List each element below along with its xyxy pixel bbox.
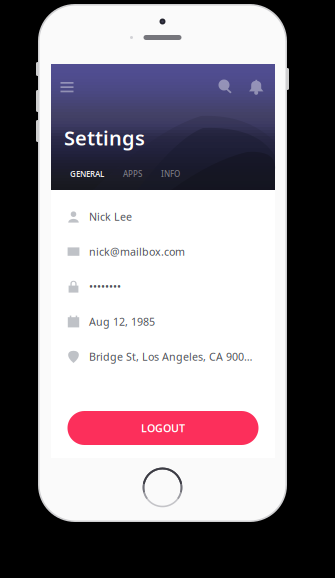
button[interactable]: Nick Lee	[51, 199, 275, 234]
button[interactable]: Notifications	[247, 64, 269, 94]
button[interactable]: ••••••••	[51, 269, 275, 304]
button[interactable]: Aug 12, 1985	[51, 304, 275, 339]
staticText: Settings	[64, 124, 145, 151]
button[interactable]: LOGOUT	[67, 411, 258, 445]
button[interactable]: Search	[215, 64, 237, 94]
staticText: ••••••••	[89, 279, 121, 294]
staticText: APPS	[123, 169, 142, 179]
button[interactable]: Bridge St, Los Angeles, CA 90012	[51, 339, 275, 374]
button[interactable]: GENERAL	[65, 163, 109, 185]
button[interactable]: nick@mailbox.com	[51, 234, 275, 269]
button[interactable]: Menu	[56, 64, 78, 94]
staticText: LOGOUT	[141, 421, 185, 435]
staticText: INFO	[161, 169, 180, 179]
staticText: Aug 12, 1985	[89, 314, 155, 329]
button[interactable]: INFO	[156, 163, 185, 185]
staticText: GENERAL	[70, 169, 104, 179]
staticText: Bridge St, Los Angeles, CA 90012	[89, 349, 254, 364]
staticText: nick@mailbox.com	[89, 244, 185, 259]
staticText: Nick Lee	[89, 209, 132, 224]
button[interactable]: APPS	[118, 163, 147, 185]
